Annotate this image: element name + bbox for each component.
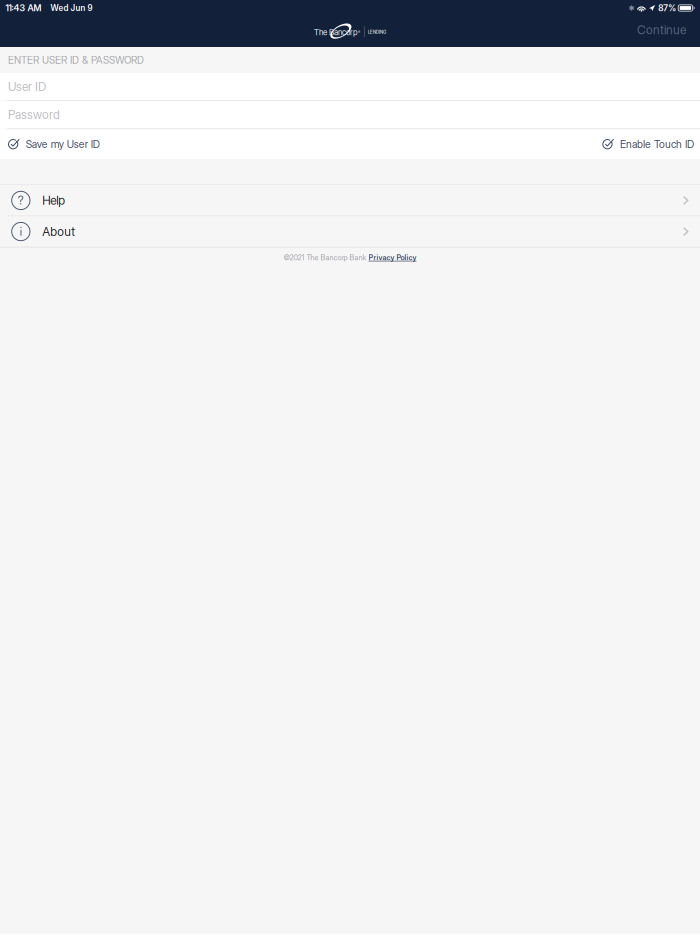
button[interactable]: Password: [0, 101, 700, 128]
staticText: Enable Touch ID: [620, 138, 694, 150]
button[interactable]: ?: [0, 185, 700, 216]
staticText: The Bancorp: [314, 27, 358, 37]
button[interactable]: Continue: [627, 18, 700, 45]
staticText: 87%: [658, 3, 676, 13]
staticText: User ID: [8, 79, 46, 94]
button[interactable]: Enable Touch ID: [602, 138, 694, 150]
staticText: ?: [18, 194, 24, 207]
staticText: Password: [8, 107, 60, 122]
button[interactable]: User ID: [0, 73, 700, 100]
button[interactable]: i: [0, 216, 700, 247]
staticText: 11:43 AM: [5, 3, 41, 13]
staticText: ©2021 The Bancorp Bank: [283, 253, 368, 262]
staticText: Help: [42, 193, 65, 208]
staticText: About: [42, 224, 75, 239]
staticText: Continue: [637, 23, 686, 37]
button[interactable]: Privacy Policy: [368, 253, 416, 262]
staticText: Save my User ID: [26, 138, 100, 150]
staticText: |: [363, 26, 365, 37]
staticText: LENDING: [368, 30, 386, 35]
staticText: Privacy Policy: [368, 253, 416, 262]
button[interactable]: Save my User ID: [8, 138, 100, 150]
staticText: ®: [358, 30, 360, 34]
staticText: ENTER USER ID & PASSWORD: [8, 54, 144, 66]
staticText: Wed Jun 9: [50, 3, 92, 13]
staticText: i: [20, 225, 22, 238]
